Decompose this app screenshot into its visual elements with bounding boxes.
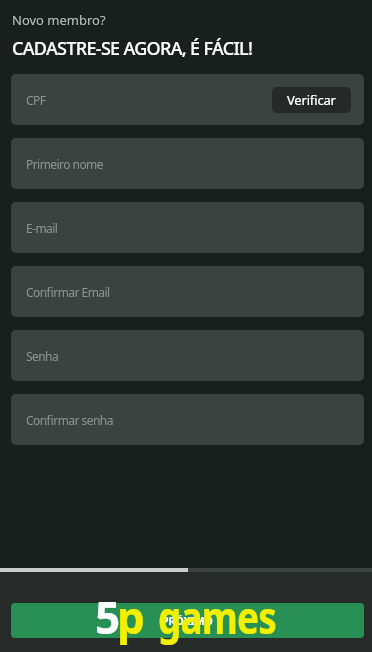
staticText: games [158, 587, 276, 647]
staticText: CPF [26, 92, 46, 108]
staticText: p [117, 587, 141, 647]
staticText: 5 [95, 587, 117, 647]
button[interactable]: Senha [11, 330, 364, 381]
button[interactable]: Confirmar Email [11, 266, 364, 317]
staticText: CADASTRE-SE AGORA, É FÁCIL! [12, 36, 253, 61]
other: Progresso do cadastro [0, 568, 372, 572]
staticText: Senha [26, 348, 59, 364]
button[interactable]: PRÓXIMO [11, 603, 364, 638]
staticText: Confirmar senha [26, 412, 113, 428]
button[interactable]: E-mail [11, 202, 364, 253]
button[interactable]: CPF [11, 74, 364, 125]
button[interactable]: Primeiro nome [11, 138, 364, 189]
button[interactable]: Confirmar senha [11, 394, 364, 445]
staticText: Verificar [287, 91, 336, 109]
staticText: Novo membro? [12, 11, 106, 29]
button[interactable]: Verificar [272, 87, 351, 113]
staticText: Confirmar Email [26, 284, 110, 300]
staticText: E-mail [26, 220, 58, 236]
staticText: PRÓXIMO [162, 614, 213, 628]
staticText: Primeiro nome [26, 156, 104, 172]
